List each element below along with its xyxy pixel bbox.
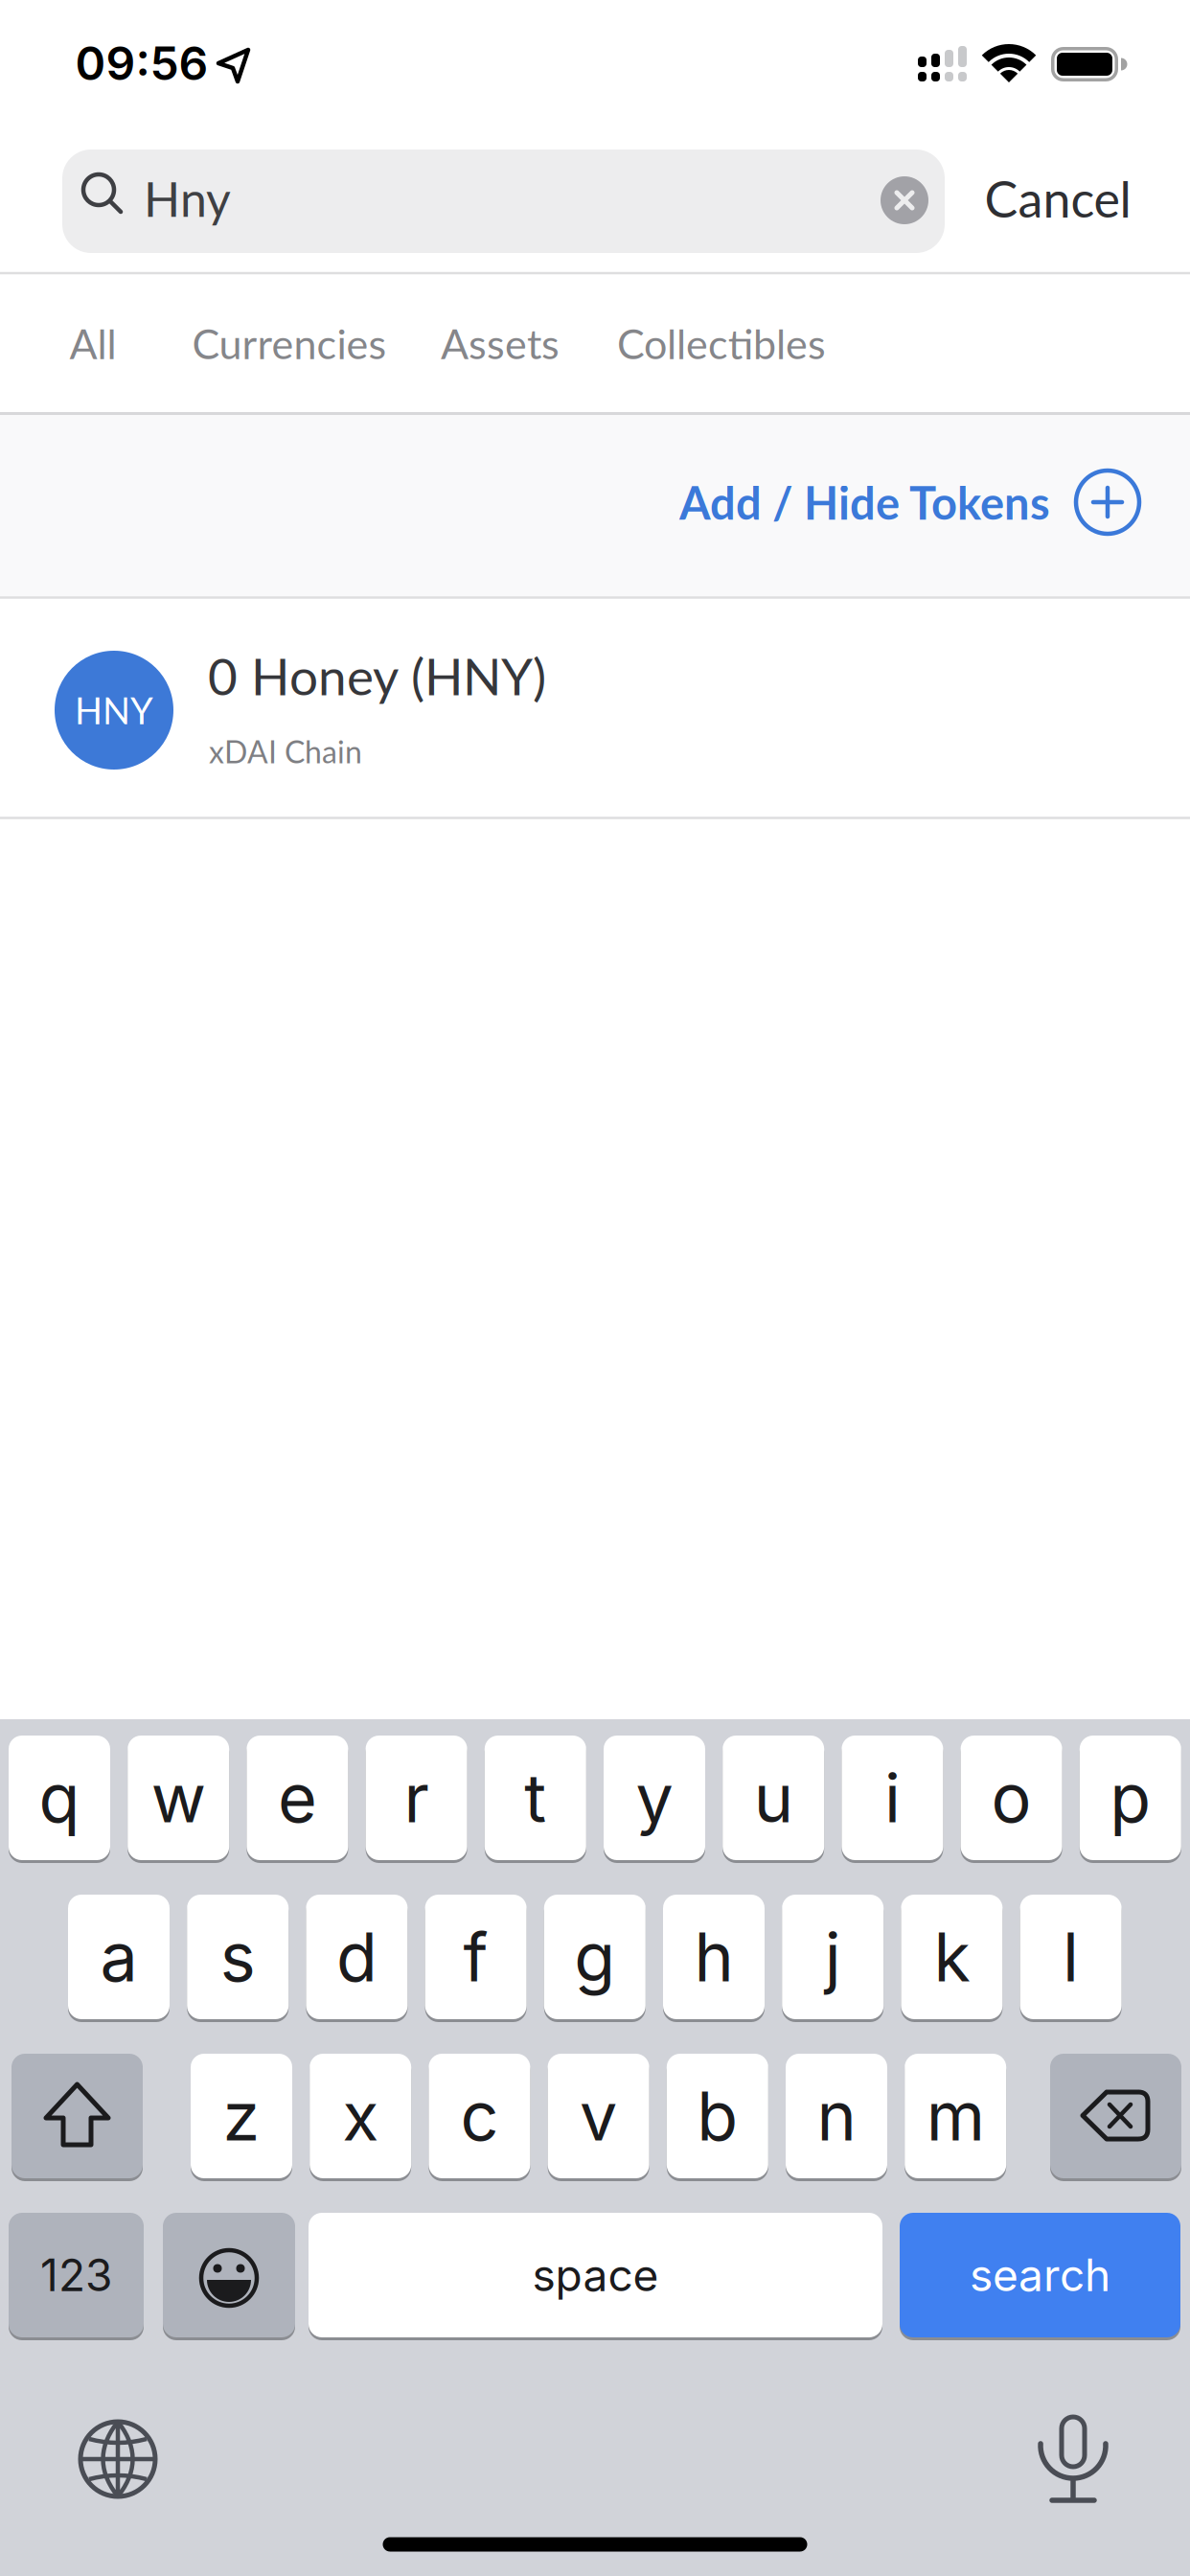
button[interactable]: j [782,1895,884,2022]
staticText: xDAI Chain [209,733,362,770]
button[interactable]: q [9,1736,110,1863]
staticText: s [220,1916,256,1998]
button[interactable]: c [429,2054,530,2181]
staticText: 123 [40,2248,112,2302]
button[interactable]: b [667,2054,768,2181]
staticText: k [934,1916,970,1998]
staticText: h [694,1916,733,1998]
button[interactable]: Collectibles [578,286,865,401]
button[interactable]: g [544,1895,646,2022]
button[interactable]: Hny [62,149,945,253]
button[interactable]: x [310,2054,411,2181]
button[interactable]: search [900,2213,1180,2340]
button[interactable]: All [40,286,146,401]
button[interactable]: k [901,1895,1003,2022]
button[interactable]: r [366,1736,467,1863]
staticText: b [697,2075,738,2157]
button[interactable]: a [68,1895,170,2022]
button[interactable]: i [842,1736,943,1863]
staticText: 09:56 [75,35,208,91]
staticText: y [636,1757,673,1838]
staticText: 0 Honey (HNY) [208,645,546,706]
staticText: f [463,1916,488,1998]
button[interactable]: l [1020,1895,1122,2022]
button[interactable]: h [663,1895,765,2022]
staticText: e [278,1757,317,1838]
staticText: HNY [75,688,153,732]
button[interactable]: u [723,1736,824,1863]
button[interactable]: 123 [9,2213,144,2340]
staticText: o [991,1757,1032,1838]
staticText: z [223,2075,260,2157]
staticText: Hny [144,170,231,227]
staticText: c [460,2075,499,2157]
button[interactable]: f [425,1895,527,2022]
staticText: m [926,2075,985,2157]
button[interactable]: Delete [1050,2054,1181,2181]
button[interactable]: d [306,1895,408,2022]
staticText: w [151,1757,206,1838]
button[interactable]: o [961,1736,1062,1863]
button[interactable]: n [786,2054,887,2181]
button[interactable]: m [905,2054,1006,2181]
button[interactable]: z [191,2054,292,2181]
staticText: Cancel [984,168,1131,228]
button[interactable]: Next keyboard [70,2411,166,2507]
staticText: search [970,2248,1110,2302]
staticText: n [817,2075,856,2157]
button[interactable]: w [128,1736,229,1863]
staticText: r [404,1757,429,1838]
staticText: g [574,1916,615,1998]
button[interactable]: Dictate [1025,2412,1121,2518]
staticText: j [825,1916,841,1998]
button[interactable]: Add / Hide Tokens [632,417,1146,593]
staticText: v [580,2075,617,2157]
button[interactable]: t [485,1736,586,1863]
staticText: Add / Hide Tokens [679,475,1050,529]
button[interactable]: s [187,1895,289,2022]
button[interactable]: e [247,1736,348,1863]
staticText: d [336,1916,377,1998]
button[interactable]: Cancel [943,155,1173,241]
staticText: Collectibles [617,318,826,368]
button[interactable]: Clear text [881,176,928,224]
staticText: q [39,1757,80,1838]
button[interactable]: HNY [0,599,1190,816]
button[interactable]: Currencies [155,286,423,401]
staticText: u [754,1757,793,1838]
button[interactable]: Shift [11,2054,143,2181]
staticText: a [100,1916,137,1998]
staticText: i [884,1757,901,1838]
staticText: x [342,2075,379,2157]
button[interactable]: v [548,2054,649,2181]
button[interactable]: space [309,2213,882,2340]
staticText: space [532,2248,659,2302]
button[interactable]: y [604,1736,705,1863]
staticText: p [1110,1757,1151,1838]
staticText: Assets [441,318,560,368]
button[interactable]: p [1080,1736,1181,1863]
staticText: All [69,318,116,368]
button[interactable]: Emoji [163,2213,295,2340]
button[interactable]: Assets [404,286,596,401]
staticText: Currencies [192,318,387,368]
staticText: l [1063,1916,1079,1998]
staticText: t [524,1757,546,1838]
